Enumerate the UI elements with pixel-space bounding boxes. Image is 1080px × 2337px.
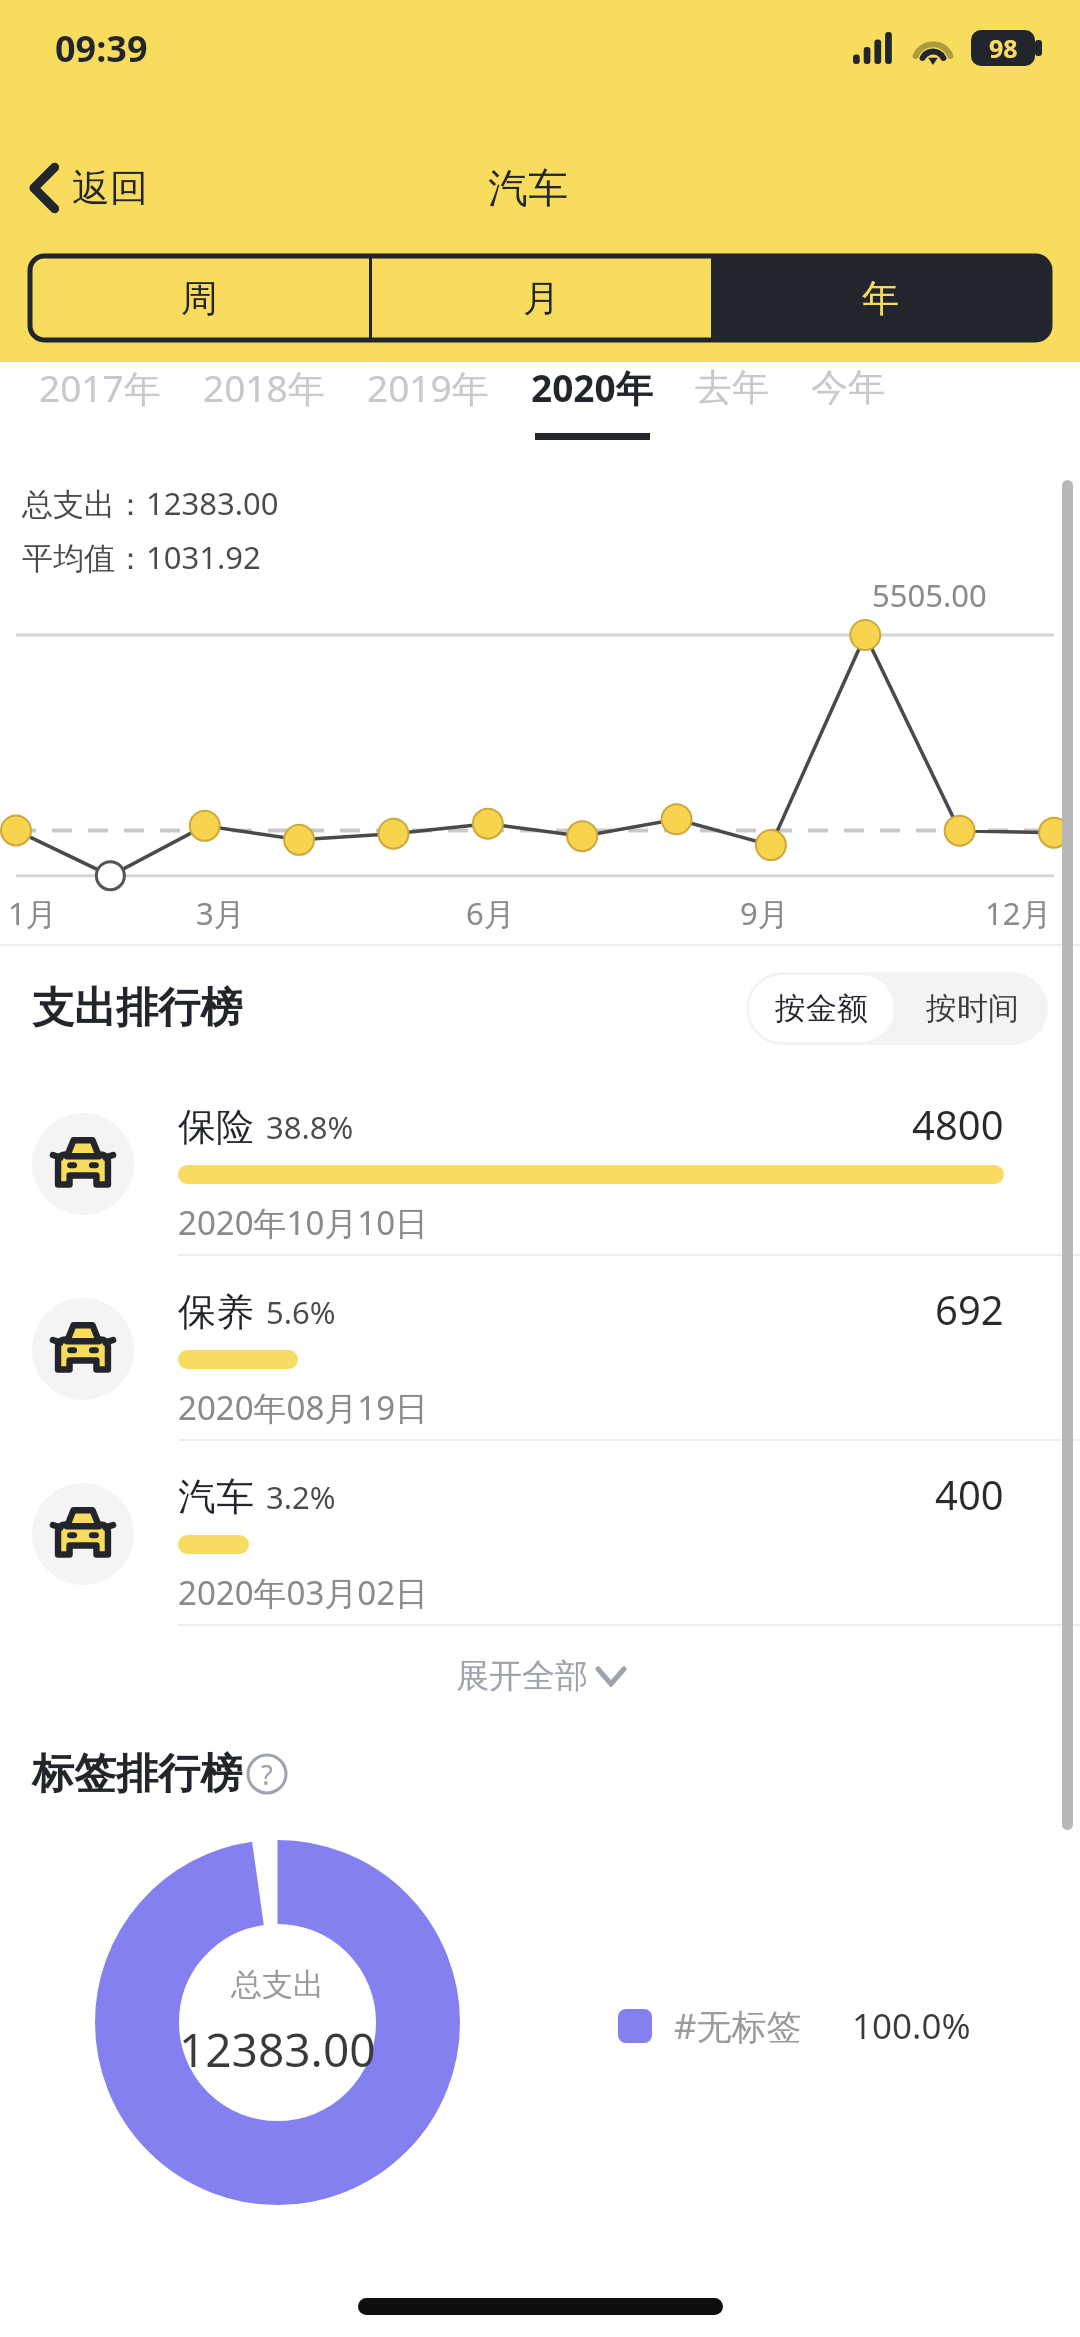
staticText: 5.6% bbox=[266, 1291, 336, 1333]
staticText: 2020年10月10日 bbox=[178, 1200, 429, 1245]
button[interactable]: 年 bbox=[711, 256, 1050, 340]
staticText: 38.8% bbox=[266, 1106, 354, 1148]
staticText: ? bbox=[261, 1756, 273, 1793]
staticText: 4800 bbox=[912, 1097, 1004, 1151]
staticText: 标签排行榜 bbox=[32, 1748, 242, 1801]
button[interactable]: 按时间 bbox=[897, 972, 1048, 1045]
staticText: 保险 bbox=[178, 1103, 254, 1151]
button[interactable]: 保险 bbox=[0, 1071, 1080, 1256]
staticText: 按金额 bbox=[775, 989, 868, 1028]
staticText: 今年 bbox=[811, 364, 885, 411]
button[interactable]: 说明 bbox=[246, 1753, 288, 1795]
button[interactable]: #无标签 bbox=[618, 2002, 971, 2050]
staticText: 年 bbox=[862, 275, 899, 322]
staticText: 5505.00 bbox=[872, 574, 987, 616]
staticText: 12383.00 bbox=[179, 2018, 376, 2081]
staticText: 2020年08月19日 bbox=[178, 1385, 429, 1430]
button[interactable]: 2017年 bbox=[18, 362, 182, 440]
staticText: 平均值：1031.92 bbox=[22, 536, 261, 578]
staticText: 2020年03月02日 bbox=[178, 1570, 429, 1615]
staticText: 1月 bbox=[8, 892, 57, 934]
staticText: 支出排行榜 bbox=[32, 982, 242, 1035]
staticText: 400 bbox=[935, 1467, 1004, 1521]
staticText: 去年 bbox=[695, 364, 769, 411]
staticText: 09:39 bbox=[55, 24, 148, 73]
button[interactable]: 返回 bbox=[0, 152, 168, 224]
staticText: 月 bbox=[523, 275, 560, 322]
staticText: 汽车 bbox=[488, 163, 568, 213]
staticText: 汽车 bbox=[178, 1473, 254, 1521]
staticText: 9月 bbox=[740, 892, 789, 934]
staticText: 100.0% bbox=[852, 2002, 971, 2050]
staticText: #无标签 bbox=[674, 2002, 802, 2050]
button[interactable]: 展开全部 bbox=[416, 1639, 664, 1713]
staticText: 展开全部 bbox=[456, 1655, 588, 1697]
staticText: 3月 bbox=[196, 892, 245, 934]
staticText: 692 bbox=[935, 1282, 1004, 1336]
staticText: 2017年 bbox=[39, 362, 161, 413]
staticText: 3.2% bbox=[266, 1476, 336, 1518]
staticText: 98 bbox=[989, 31, 1018, 65]
button[interactable]: 汽车 bbox=[0, 1441, 1080, 1626]
button[interactable]: 今年 bbox=[790, 364, 906, 438]
button[interactable]: 月 bbox=[372, 256, 711, 340]
staticText: 总支出：12383.00 bbox=[22, 482, 279, 524]
button[interactable]: 去年 bbox=[674, 364, 790, 438]
staticText: 返回 bbox=[72, 164, 148, 212]
button[interactable]: 2019年 bbox=[346, 362, 510, 440]
button[interactable]: 2020年 bbox=[510, 362, 674, 440]
staticText: 按时间 bbox=[926, 989, 1019, 1028]
button[interactable]: 周 bbox=[30, 256, 369, 340]
staticText: 2018年 bbox=[203, 362, 325, 413]
staticText: 总支出 bbox=[231, 1965, 324, 2004]
staticText: 6月 bbox=[466, 892, 515, 934]
button[interactable]: 按金额 bbox=[746, 972, 897, 1045]
staticText: 2019年 bbox=[367, 362, 489, 413]
staticText: 12月 bbox=[985, 892, 1052, 934]
staticText: 2020年 bbox=[531, 362, 653, 413]
staticText: 周 bbox=[181, 275, 218, 322]
button[interactable]: 保养 bbox=[0, 1256, 1080, 1441]
button[interactable]: 2018年 bbox=[182, 362, 346, 440]
staticText: 保养 bbox=[178, 1288, 254, 1336]
